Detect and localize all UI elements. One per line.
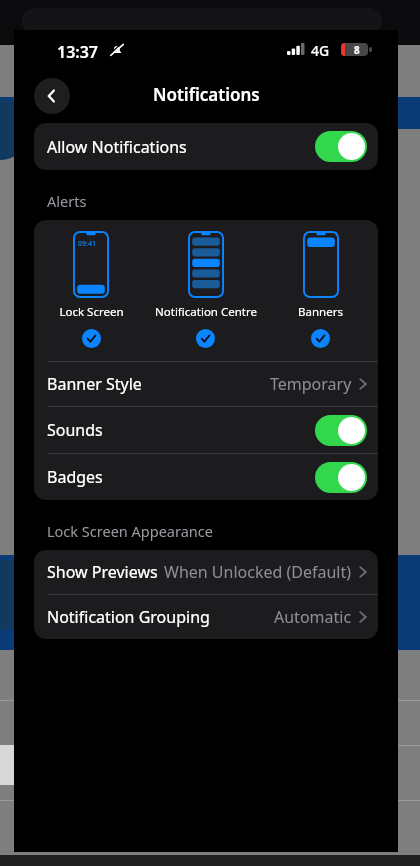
button[interactable]: Selected bbox=[196, 329, 215, 348]
staticText: Lock Screen Appearance bbox=[47, 521, 213, 541]
staticText: 13:37 bbox=[57, 41, 99, 63]
staticText: Notification Centre bbox=[155, 304, 257, 320]
button[interactable]: Sounds bbox=[34, 407, 378, 453]
staticText: 8 bbox=[354, 43, 360, 56]
staticText: Notifications bbox=[153, 83, 260, 106]
staticText: Temporary bbox=[270, 373, 352, 395]
staticText: Banners bbox=[298, 304, 343, 320]
staticText: Notification Grouping bbox=[47, 606, 210, 628]
button[interactable]: Toggle bbox=[315, 415, 367, 446]
staticText: Badges bbox=[47, 466, 103, 488]
button[interactable]: Show Previews bbox=[34, 550, 378, 594]
button[interactable]: Banners bbox=[263, 231, 378, 348]
button[interactable]: 09:41 bbox=[34, 231, 148, 348]
button[interactable]: Banner Style bbox=[34, 362, 378, 406]
staticText: Alerts bbox=[47, 191, 87, 211]
staticText: 09:41 bbox=[78, 239, 96, 249]
staticText: Banner Style bbox=[47, 373, 142, 395]
button[interactable]: Selected bbox=[311, 329, 330, 348]
button[interactable]: Toggle bbox=[315, 131, 367, 162]
staticText: When Unlocked (Default) bbox=[164, 561, 352, 583]
button[interactable]: Allow Notifications bbox=[34, 123, 378, 170]
staticText: Show Previews bbox=[47, 561, 158, 583]
button[interactable]: Notification Grouping bbox=[34, 595, 378, 639]
staticText: Automatic bbox=[274, 606, 352, 628]
button[interactable]: Back bbox=[34, 78, 70, 114]
button[interactable]: Notification Centre bbox=[148, 231, 263, 348]
staticText: 4G bbox=[311, 41, 330, 60]
button[interactable]: Selected bbox=[82, 329, 101, 348]
button[interactable]: Toggle bbox=[315, 462, 367, 493]
staticText: Sounds bbox=[47, 419, 103, 441]
button[interactable]: Badges bbox=[34, 454, 378, 500]
staticText: Allow Notifications bbox=[47, 136, 187, 158]
staticText: Lock Screen bbox=[59, 304, 124, 320]
